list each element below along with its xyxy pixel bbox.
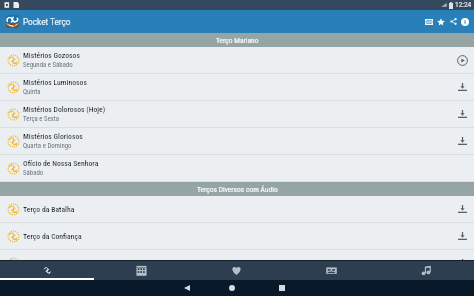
button[interactable]: Download (450, 224, 474, 248)
staticText: Sábado (23, 169, 44, 177)
button[interactable]: Calendar (423, 10, 435, 33)
button[interactable]: Download (450, 102, 474, 126)
staticText: Ofício de Nossa Senhora (23, 159, 99, 168)
button[interactable]: Mistérios Luminosos (0, 74, 474, 100)
staticText: Quarta e Domingo (23, 142, 72, 150)
button[interactable]: Rosary (0, 261, 94, 280)
button[interactable]: Terço da Batalha (0, 196, 474, 222)
button[interactable]: Ofício de Nossa Senhora (0, 155, 474, 181)
staticText: Pocket Terço (23, 17, 71, 27)
button[interactable]: Back (167, 280, 207, 296)
button[interactable]: Info (459, 10, 471, 33)
staticText: Mistérios Gozosos (23, 51, 80, 60)
button[interactable]: Play (450, 48, 474, 72)
button[interactable]: Share (447, 10, 459, 33)
button[interactable]: Download (450, 251, 474, 260)
staticText: Terço da Batalha (23, 205, 75, 214)
button[interactable]: Calendar (94, 261, 189, 280)
button[interactable]: Home (207, 280, 257, 296)
button[interactable]: Music (379, 261, 474, 280)
staticText: Quinta (23, 88, 41, 96)
button[interactable]: Download (450, 197, 474, 221)
staticText: Mistérios Luminosos (23, 78, 87, 87)
staticText: Terço da Confiança (23, 232, 82, 241)
staticText: Mistérios Gloriosos (23, 132, 83, 141)
button[interactable]: Favorites (435, 10, 447, 33)
button[interactable]: Terço da Misericórdia (0, 250, 474, 260)
button[interactable]: Mistérios Gozosos (0, 47, 474, 73)
button[interactable]: Download (450, 129, 474, 153)
button[interactable]: Download (450, 75, 474, 99)
button[interactable]: Terço da Confiança (0, 223, 474, 249)
staticText: Terço Mariano (216, 36, 259, 45)
button[interactable]: Favorites (189, 261, 284, 280)
staticText: Terça e Sexta (23, 115, 60, 123)
button[interactable]: Mistérios Gloriosos (0, 128, 474, 154)
button[interactable]: Mistérios Dolorosos (Hoje) (0, 101, 474, 127)
staticText: Terços Diversos com Áudio (197, 185, 278, 194)
staticText: Mistérios Dolorosos (Hoje) (23, 105, 106, 114)
button[interactable]: Prayers (284, 261, 379, 280)
staticText: 12:24 (455, 1, 472, 9)
staticText: Segunda e Sábado (23, 61, 73, 69)
button[interactable]: Recents (257, 280, 307, 296)
